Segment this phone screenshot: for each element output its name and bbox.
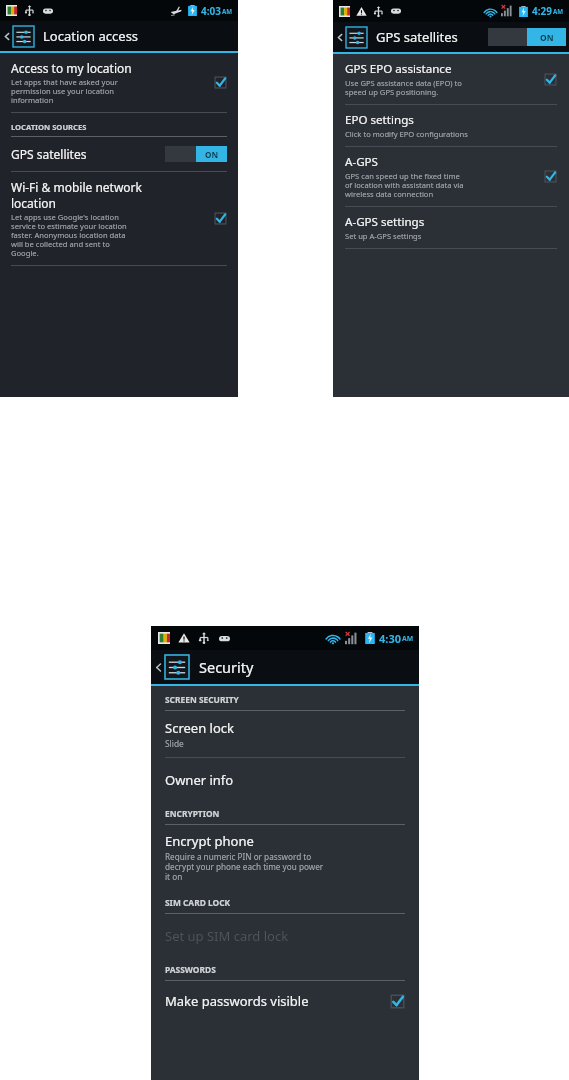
staticText: Security <box>199 657 254 677</box>
button[interactable]: Checkbox, checked <box>390 994 405 1009</box>
staticText: Set up SIM card lock <box>165 927 289 945</box>
staticText: 4:03 <box>201 4 221 18</box>
button[interactable]: Screen lock <box>151 711 419 757</box>
button[interactable]: Encrypt phone <box>151 825 419 889</box>
staticText: 4:29 <box>532 4 552 18</box>
button[interactable]: GPS EPO assistance <box>333 54 569 104</box>
staticText: PASSWORDS <box>165 964 216 975</box>
staticText: ON <box>540 32 554 43</box>
staticText: Let apps use Google's location service t… <box>11 212 127 258</box>
button[interactable]: Checkbox, checked <box>544 73 557 86</box>
staticText: GPS can speed up the fixed time of locat… <box>345 171 464 199</box>
button[interactable]: Checkbox, checked <box>214 212 227 225</box>
staticText: Screen lock <box>165 719 234 737</box>
staticText: Let apps that have asked your permission… <box>11 77 118 105</box>
button[interactable]: GPS satellites <box>0 137 238 171</box>
staticText: Require a numeric PIN or password to dec… <box>165 851 324 882</box>
staticText: Set up A-GPS settings <box>345 231 422 241</box>
staticText: Wi-Fi & mobile network location <box>11 179 142 211</box>
staticText: LOCATION SOURCES <box>11 122 87 132</box>
button[interactable]: Navigate up <box>333 27 369 48</box>
button[interactable]: Navigate up <box>0 26 36 47</box>
staticText: GPS satellites <box>376 28 458 46</box>
button[interactable]: Make passwords visible <box>151 981 419 1021</box>
button[interactable]: Toggle, on <box>488 28 566 46</box>
staticText: 4:30 <box>379 631 401 646</box>
staticText: AM <box>222 7 233 15</box>
button[interactable]: EPO settings <box>333 105 569 146</box>
staticText: A-GPS <box>345 154 378 170</box>
staticText: ON <box>205 149 219 160</box>
staticText: Click to modify EPO configurations <box>345 129 468 139</box>
staticText: Encrypt phone <box>165 832 254 850</box>
staticText: Use GPS assistance data (EPO) to speed u… <box>345 78 462 97</box>
staticText: Slide <box>165 738 184 749</box>
staticText: Location access <box>43 27 139 45</box>
button[interactable]: Toggle, on <box>165 146 227 162</box>
button[interactable]: Owner info <box>151 758 419 802</box>
staticText: GPS satellites <box>11 146 87 162</box>
staticText: AM <box>553 7 564 15</box>
staticText: SIM CARD LOCK <box>165 897 231 908</box>
button[interactable]: Access to my location <box>0 53 238 112</box>
staticText: ENCRYPTION <box>165 808 220 819</box>
button[interactable]: Set up SIM card lock <box>151 914 419 958</box>
staticText: EPO settings <box>345 112 414 128</box>
staticText: GPS EPO assistance <box>345 61 452 77</box>
button[interactable]: Checkbox, checked <box>214 76 227 89</box>
staticText: AM <box>402 634 414 643</box>
staticText: Make passwords visible <box>165 992 309 1010</box>
staticText: A-GPS settings <box>345 214 425 230</box>
staticText: SCREEN SECURITY <box>165 694 239 705</box>
button[interactable]: Navigate up <box>151 655 191 679</box>
staticText: Owner info <box>165 771 234 789</box>
button[interactable]: Checkbox, checked <box>544 170 557 183</box>
button[interactable]: A-GPS <box>333 147 569 206</box>
button[interactable]: Wi-Fi & mobile network location <box>0 172 238 265</box>
button[interactable]: A-GPS settings <box>333 207 569 248</box>
staticText: Access to my location <box>11 60 132 76</box>
